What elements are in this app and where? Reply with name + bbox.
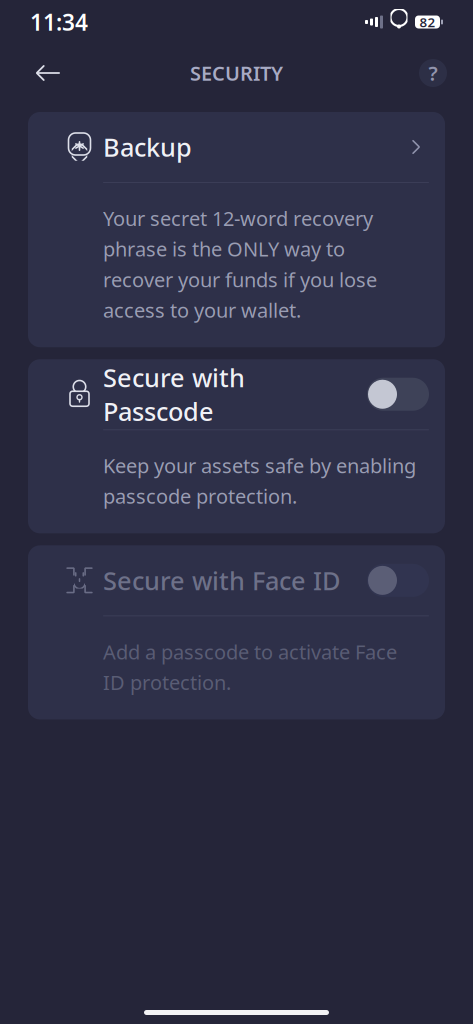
staticText: 82 (419, 13, 435, 31)
staticText: Add a passcode to activate Face ID prote… (103, 638, 397, 695)
staticText: Backup (103, 130, 192, 164)
button[interactable]: Secure with Passcode (367, 372, 445, 417)
button[interactable]: Back (26, 51, 70, 95)
staticText: SECURITY (190, 60, 283, 86)
staticText: Your secret 12-word recovery phrase is t… (103, 205, 377, 323)
staticText: Secure with Face ID (103, 563, 341, 597)
staticText: Keep your assets safe by enabling passco… (103, 452, 416, 509)
button[interactable]: Secure with Face ID (367, 558, 445, 603)
button[interactable]: Help (419, 59, 447, 87)
button[interactable]: Backup (0, 112, 473, 347)
staticText: Secure with Passcode (103, 361, 245, 428)
staticText: 11:34 (30, 7, 88, 37)
staticText: ? (428, 60, 437, 86)
